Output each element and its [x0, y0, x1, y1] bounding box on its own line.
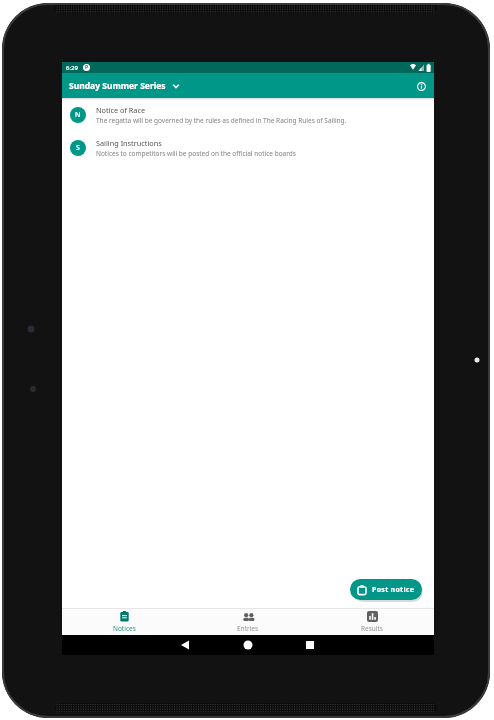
button[interactable]: S — [62, 131, 434, 164]
staticText: S — [76, 143, 80, 153]
button[interactable]: Entries — [186, 608, 310, 635]
button[interactable]: Notices — [62, 608, 186, 635]
staticText: Sailing Instructions — [96, 138, 162, 148]
button[interactable]: Sunday Summer Series — [69, 80, 180, 92]
staticText: Notice of Race — [96, 105, 146, 115]
staticText: Notices — [113, 624, 136, 633]
staticText: N — [75, 110, 81, 120]
button[interactable]: N — [62, 98, 434, 131]
button[interactable]: Post notice — [350, 579, 422, 600]
staticText: Notices to competitors will be posted on… — [96, 149, 296, 158]
staticText: P — [85, 64, 89, 71]
staticText: Entries — [237, 624, 259, 633]
staticText: Sunday Summer Series — [69, 80, 166, 92]
staticText: Post notice — [372, 585, 415, 595]
button[interactable] — [415, 80, 427, 92]
staticText: The regatta will be governed by the rule… — [96, 116, 347, 125]
staticText: Results — [361, 624, 383, 633]
button[interactable]: Results — [310, 608, 434, 635]
staticText: 6:29 — [66, 64, 78, 72]
